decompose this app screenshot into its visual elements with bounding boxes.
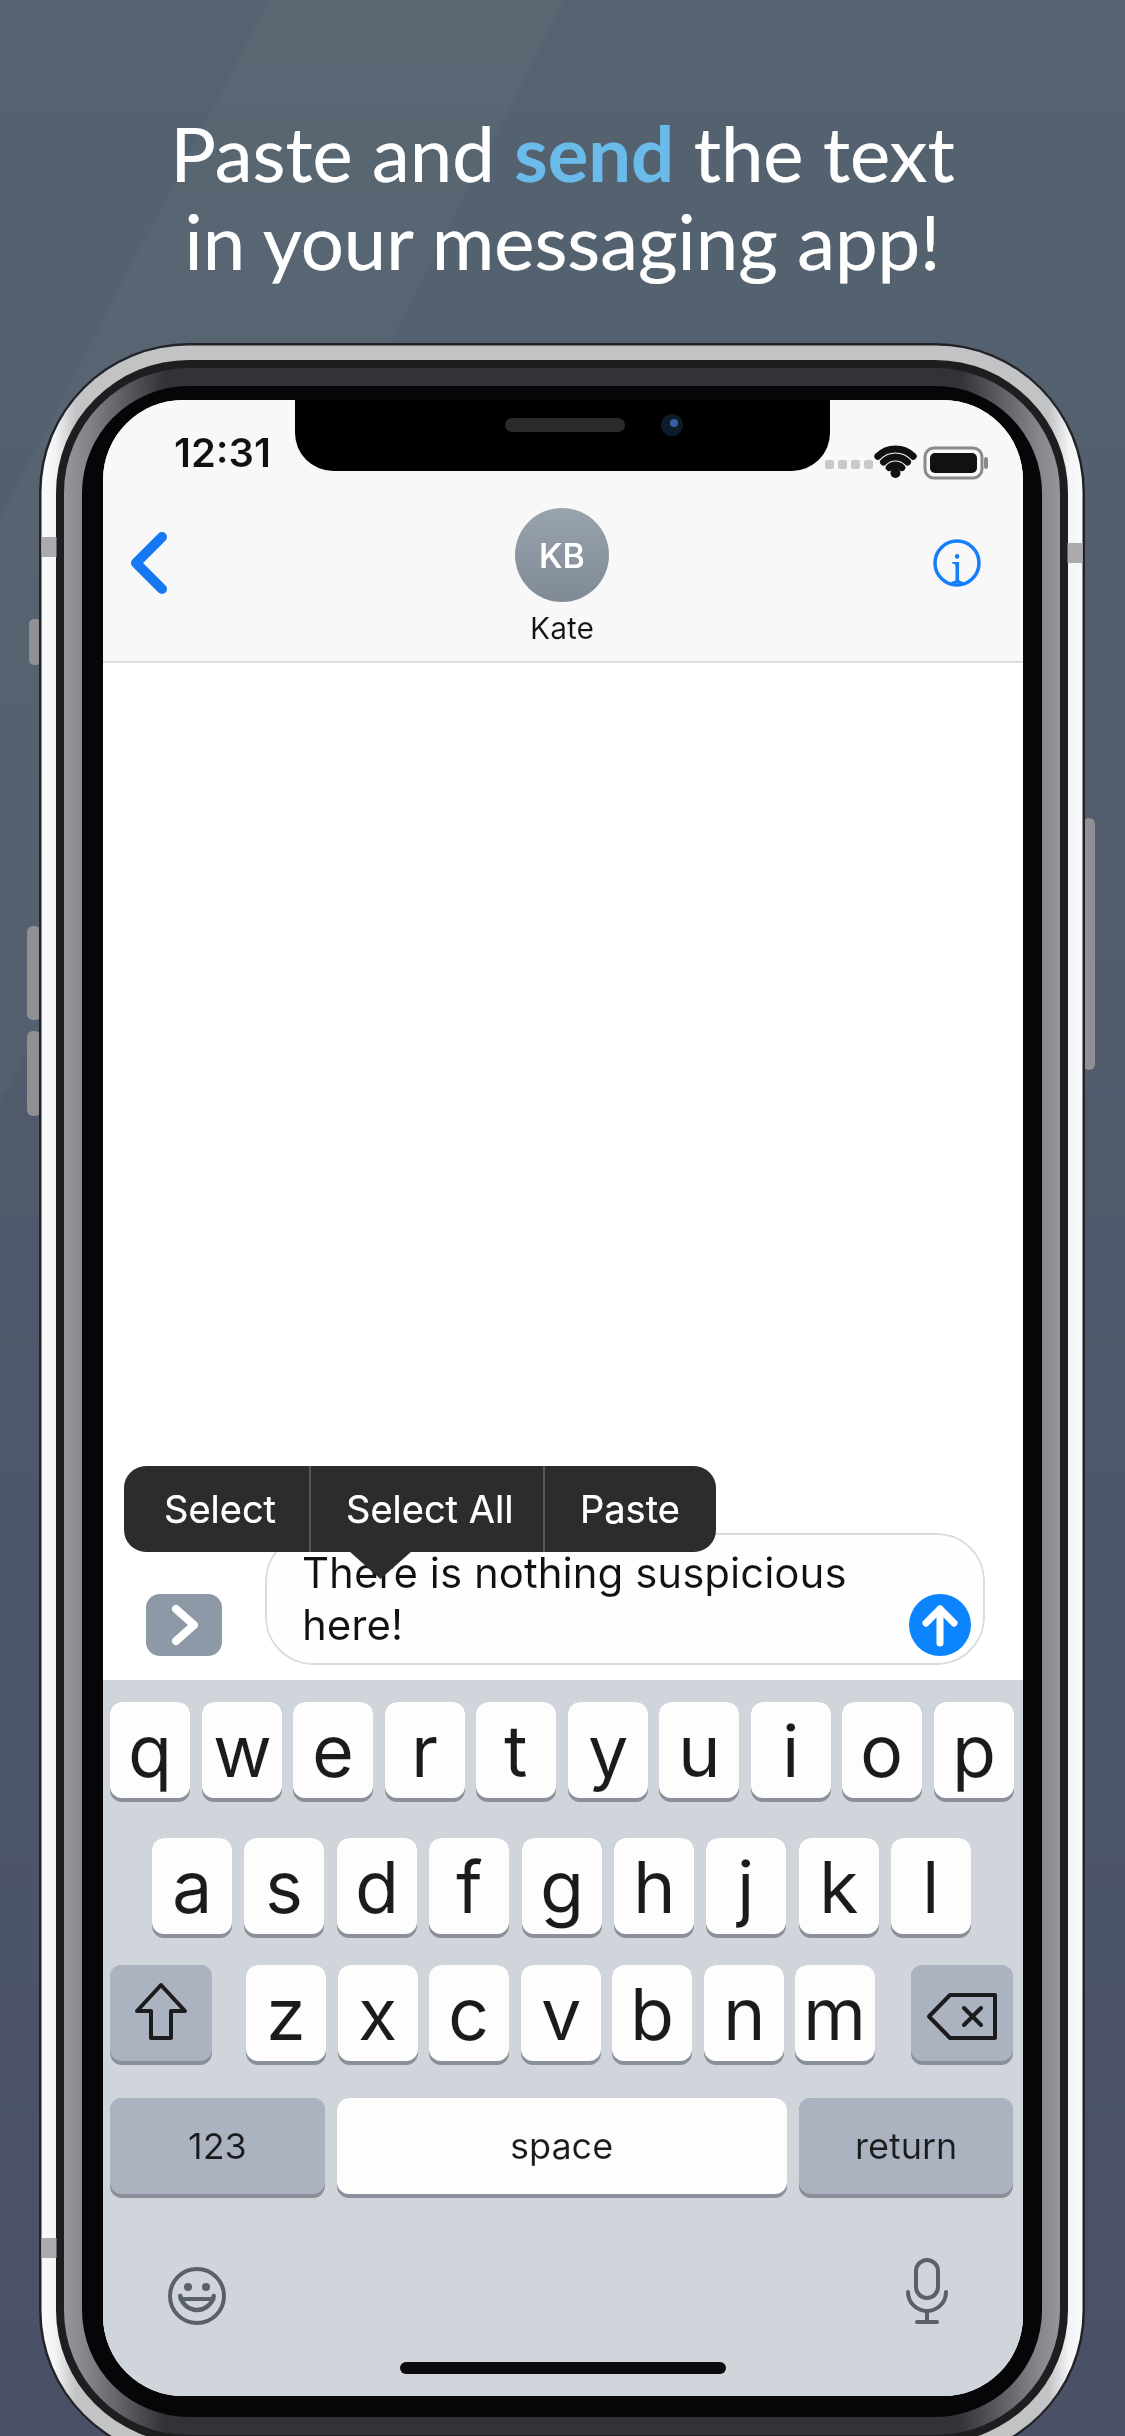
staticText: o — [860, 1707, 904, 1794]
staticText: return — [855, 2124, 958, 2168]
staticText: a — [172, 1843, 213, 1930]
staticText: g — [540, 1843, 585, 1930]
button[interactable] — [110, 1965, 212, 2065]
button[interactable]: m — [795, 1965, 875, 2065]
button[interactable]: v — [521, 1965, 601, 2065]
staticText: d — [355, 1843, 400, 1930]
staticText: m — [803, 1970, 867, 2057]
button[interactable]: 123 — [110, 2098, 325, 2198]
staticText: p — [952, 1707, 997, 1794]
staticText: 12:31 — [174, 428, 271, 476]
button[interactable]: Select All — [320, 1479, 540, 1539]
staticText: 123 — [188, 2124, 247, 2168]
staticText: w — [213, 1707, 272, 1794]
staticText: y — [588, 1707, 629, 1794]
button[interactable] — [931, 537, 983, 589]
staticText: v — [541, 1970, 582, 2057]
staticText: Paste — [580, 1486, 680, 1532]
staticText: f — [456, 1843, 483, 1930]
button[interactable]: Paste — [550, 1479, 710, 1539]
button[interactable]: h — [614, 1838, 694, 1938]
button[interactable]: i — [751, 1702, 831, 1802]
staticText: t — [504, 1707, 528, 1794]
staticText: q — [128, 1707, 173, 1794]
staticText: z — [266, 1970, 306, 2057]
button[interactable]: r — [385, 1702, 465, 1802]
button[interactable]: s — [244, 1838, 324, 1938]
button[interactable]: e — [293, 1702, 373, 1802]
staticText: c — [448, 1970, 490, 2057]
button[interactable]: y — [568, 1702, 648, 1802]
staticText: KB — [539, 535, 585, 576]
button[interactable]: c — [429, 1965, 509, 2065]
staticText: u — [678, 1707, 721, 1794]
staticText: r — [411, 1707, 439, 1794]
staticText: h — [633, 1843, 676, 1930]
button[interactable]: p — [934, 1702, 1014, 1802]
button[interactable]: q — [110, 1702, 190, 1802]
staticText: b — [630, 1970, 675, 2057]
button[interactable] — [909, 1594, 971, 1656]
staticText: k — [819, 1843, 859, 1930]
staticText: j — [737, 1843, 755, 1930]
button[interactable]: w — [202, 1702, 282, 1802]
button[interactable]: g — [522, 1838, 602, 1938]
button[interactable]: j — [706, 1838, 786, 1938]
button[interactable]: x — [338, 1965, 418, 2065]
button[interactable]: u — [659, 1702, 739, 1802]
button[interactable]: k — [799, 1838, 879, 1938]
button[interactable] — [146, 1594, 222, 1656]
staticText: i — [782, 1707, 800, 1794]
button[interactable]: a — [152, 1838, 232, 1938]
button[interactable]: f — [429, 1838, 509, 1938]
staticText: n — [723, 1970, 766, 2057]
button[interactable]: n — [704, 1965, 784, 2065]
button[interactable]: o — [842, 1702, 922, 1802]
button[interactable] — [123, 525, 178, 600]
staticText: s — [265, 1843, 304, 1930]
staticText: Kate — [530, 610, 595, 646]
button[interactable]: z — [246, 1965, 326, 2065]
staticText: Select — [164, 1486, 277, 1532]
staticText: x — [358, 1970, 398, 2057]
staticText: e — [312, 1707, 354, 1794]
staticText: Paste and send the text in your messagin… — [0, 107, 1125, 287]
button[interactable]: space — [337, 2098, 787, 2198]
button[interactable]: t — [476, 1702, 556, 1802]
button[interactable]: d — [337, 1838, 417, 1938]
staticText: space — [510, 2124, 614, 2168]
button[interactable]: b — [612, 1965, 692, 2065]
staticText: There is nothing suspicious here! — [302, 1547, 847, 1650]
staticText: i — [951, 542, 964, 586]
button[interactable]: Select — [130, 1479, 310, 1539]
button[interactable]: l — [891, 1838, 971, 1938]
button[interactable]: return — [799, 2098, 1013, 2198]
staticText: l — [922, 1843, 940, 1930]
button[interactable] — [911, 1965, 1013, 2065]
staticText: Select All — [346, 1486, 514, 1532]
